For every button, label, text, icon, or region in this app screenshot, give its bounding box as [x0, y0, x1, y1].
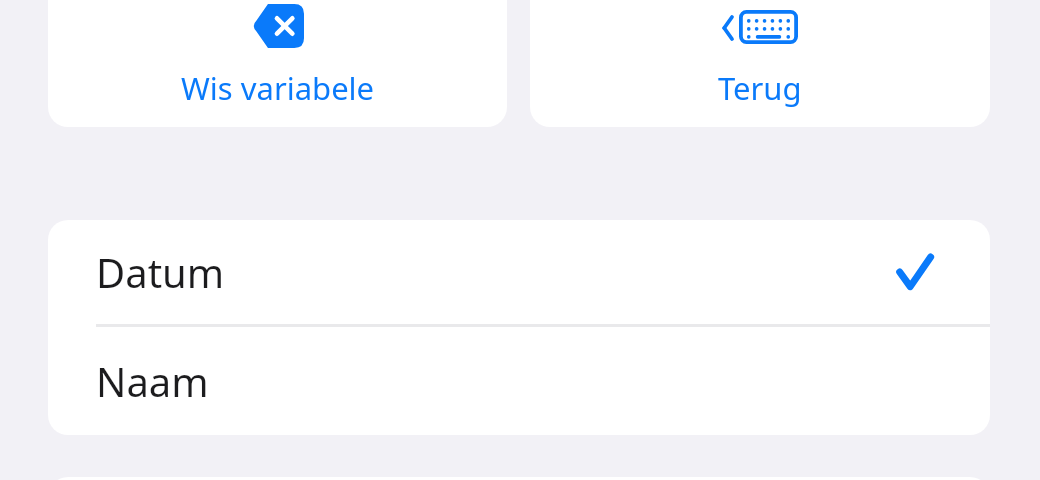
staticText: Datum	[96, 245, 225, 299]
button[interactable]: Wis variabele	[48, 0, 507, 127]
button[interactable]: Naam	[48, 327, 990, 435]
staticText: Wis variabele	[181, 67, 375, 109]
other: Wis variabele	[251, 4, 304, 48]
staticText: Naam	[96, 354, 209, 408]
button[interactable]: Terug	[530, 0, 990, 127]
button[interactable]: Datum	[48, 220, 990, 324]
other: Terug	[722, 4, 798, 48]
staticText: Terug	[718, 67, 802, 109]
